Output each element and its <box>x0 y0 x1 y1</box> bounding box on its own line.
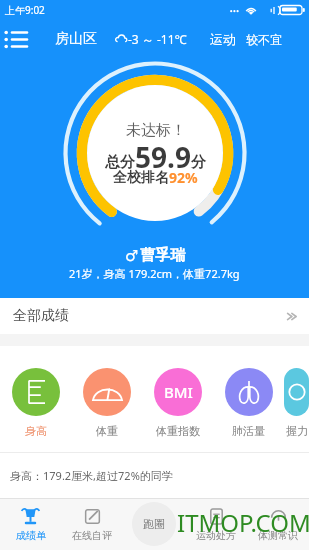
staticText: 上午9:02 <box>5 3 45 17</box>
button[interactable]: 运动处方 <box>185 507 247 542</box>
staticText: 较不宜 <box>246 32 282 47</box>
staticText: 全部成绩 <box>13 307 69 325</box>
staticText: 肺活量 <box>232 424 265 438</box>
staticText: 身高：179.2厘米,超过72%的同学 <box>10 468 173 483</box>
staticText: 握力 <box>286 424 308 438</box>
staticText: 在线自评 <box>72 529 112 542</box>
staticText: 曹孚瑞 <box>140 246 185 265</box>
staticText: BMI <box>164 382 193 402</box>
staticText: 运动处方 <box>196 529 236 542</box>
staticText: 未达标！ <box>126 121 186 140</box>
staticText: 分 <box>191 153 206 172</box>
button[interactable]: 跑圈 <box>132 502 176 546</box>
button[interactable]: 全部成绩 <box>0 298 309 334</box>
button[interactable]: 握力 <box>284 368 309 438</box>
staticText: 全校排名 <box>113 169 169 187</box>
staticText: 体测常识 <box>258 529 298 542</box>
staticText: 身高 <box>25 424 47 438</box>
staticText: 92% <box>169 168 198 187</box>
button[interactable]: Menu <box>0 23 31 55</box>
button[interactable]: 体测常识 <box>247 507 309 542</box>
staticText: 21岁，身高 179.2cm，体重72.7kg <box>69 266 240 281</box>
staticText: 房山区 <box>55 30 97 48</box>
staticText: 运动 <box>210 31 236 47</box>
staticText: 59.9 <box>135 138 191 176</box>
button[interactable]: 在线自评 <box>61 507 123 542</box>
button[interactable]: BMI <box>142 368 213 438</box>
button[interactable]: 体重 <box>71 368 142 438</box>
button[interactable]: 成绩单 <box>0 507 61 542</box>
button[interactable]: 肺活量 <box>213 368 284 438</box>
staticText: -3 ～ -11℃ <box>128 31 187 47</box>
staticText: 成绩单 <box>16 529 46 542</box>
staticText: ♂ <box>125 247 139 264</box>
staticText: ITMOP.COM <box>177 506 309 539</box>
staticText: 体重指数 <box>156 424 200 438</box>
staticText: 体重 <box>96 424 118 438</box>
button[interactable]: 身高 <box>0 368 71 438</box>
staticText: 跑圈 <box>143 517 165 531</box>
staticText: 总分 <box>105 153 135 172</box>
